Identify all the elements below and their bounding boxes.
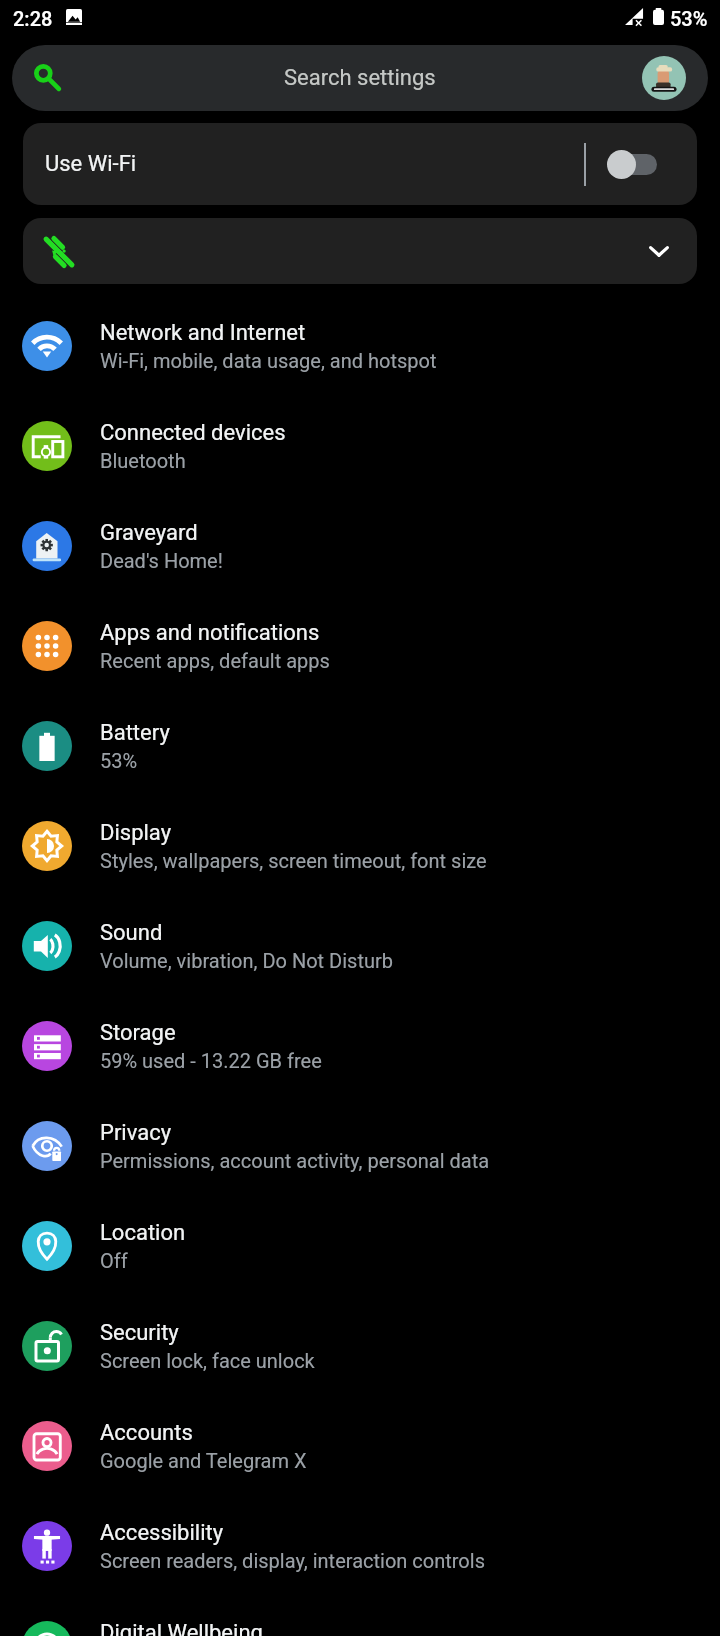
other: Search bbox=[34, 64, 61, 91]
staticText: Search settings bbox=[284, 65, 436, 91]
staticText: Styles, wallpapers, screen timeout, font… bbox=[100, 849, 487, 872]
button[interactable]: Graveyard bbox=[0, 501, 720, 601]
button[interactable]: Account bbox=[642, 56, 686, 100]
staticText: 53% bbox=[670, 7, 708, 30]
staticText: Accounts bbox=[100, 1420, 193, 1446]
button[interactable]: Storage bbox=[0, 1001, 720, 1101]
staticText: Connected devices bbox=[100, 420, 286, 446]
staticText: Wi-Fi, mobile, data usage, and hotspot bbox=[100, 349, 437, 372]
staticText: 59% used - 13.22 GB free bbox=[100, 1049, 322, 1072]
staticText: Google and Telegram X bbox=[100, 1449, 307, 1472]
button[interactable]: Privacy bbox=[0, 1101, 720, 1201]
staticText: Network and Internet bbox=[100, 320, 306, 346]
button[interactable]: Network and Internet bbox=[0, 301, 720, 401]
staticText: Accessibility bbox=[100, 1520, 224, 1546]
staticText: Graveyard bbox=[100, 520, 198, 546]
staticText: Storage bbox=[100, 1020, 176, 1046]
button[interactable]: Sound bbox=[0, 901, 720, 1001]
other: Expand bbox=[645, 237, 673, 265]
button[interactable]: Digital Wellbeing bbox=[0, 1601, 720, 1636]
button[interactable]: Accounts bbox=[0, 1401, 720, 1501]
staticText: Display bbox=[100, 820, 172, 846]
staticText: 53% bbox=[100, 749, 138, 772]
button[interactable]: Apps and notifications bbox=[0, 601, 720, 701]
button[interactable]: Battery bbox=[0, 701, 720, 801]
button[interactable]: Security bbox=[0, 1301, 720, 1401]
staticText: Use Wi-Fi bbox=[45, 151, 137, 177]
staticText: Battery bbox=[100, 720, 170, 746]
button[interactable]: Wi-Fi status bbox=[23, 218, 697, 284]
staticText: Permissions, account activity, personal … bbox=[100, 1149, 490, 1172]
button[interactable]: Location bbox=[0, 1201, 720, 1301]
staticText: Dead's Home! bbox=[100, 549, 223, 572]
button[interactable]: Accessibility bbox=[0, 1501, 720, 1601]
button[interactable]: Connected devices bbox=[0, 401, 720, 501]
staticText: Location bbox=[100, 1220, 186, 1246]
staticText: Bluetooth bbox=[100, 449, 186, 472]
staticText: Privacy bbox=[100, 1120, 172, 1146]
staticText: Security bbox=[100, 1320, 179, 1346]
button[interactable]: Wi-Fi toggle bbox=[607, 136, 667, 192]
staticText: Screen lock, face unlock bbox=[100, 1349, 315, 1372]
staticText: Sound bbox=[100, 920, 163, 946]
button[interactable]: Use Wi-Fi bbox=[23, 123, 697, 205]
staticText: Apps and notifications bbox=[100, 620, 320, 646]
staticText: Off bbox=[100, 1249, 128, 1272]
staticText: Digital Wellbeing bbox=[100, 1620, 263, 1636]
other: Wi-Fi status bbox=[44, 237, 74, 267]
staticText: Screen readers, display, interaction con… bbox=[100, 1549, 485, 1572]
button[interactable]: Display bbox=[0, 801, 720, 901]
staticText: Recent apps, default apps bbox=[100, 649, 330, 672]
staticText: 2:28 bbox=[13, 7, 53, 30]
staticText: Volume, vibration, Do Not Disturb bbox=[100, 949, 393, 972]
button[interactable]: Search bbox=[12, 45, 708, 111]
